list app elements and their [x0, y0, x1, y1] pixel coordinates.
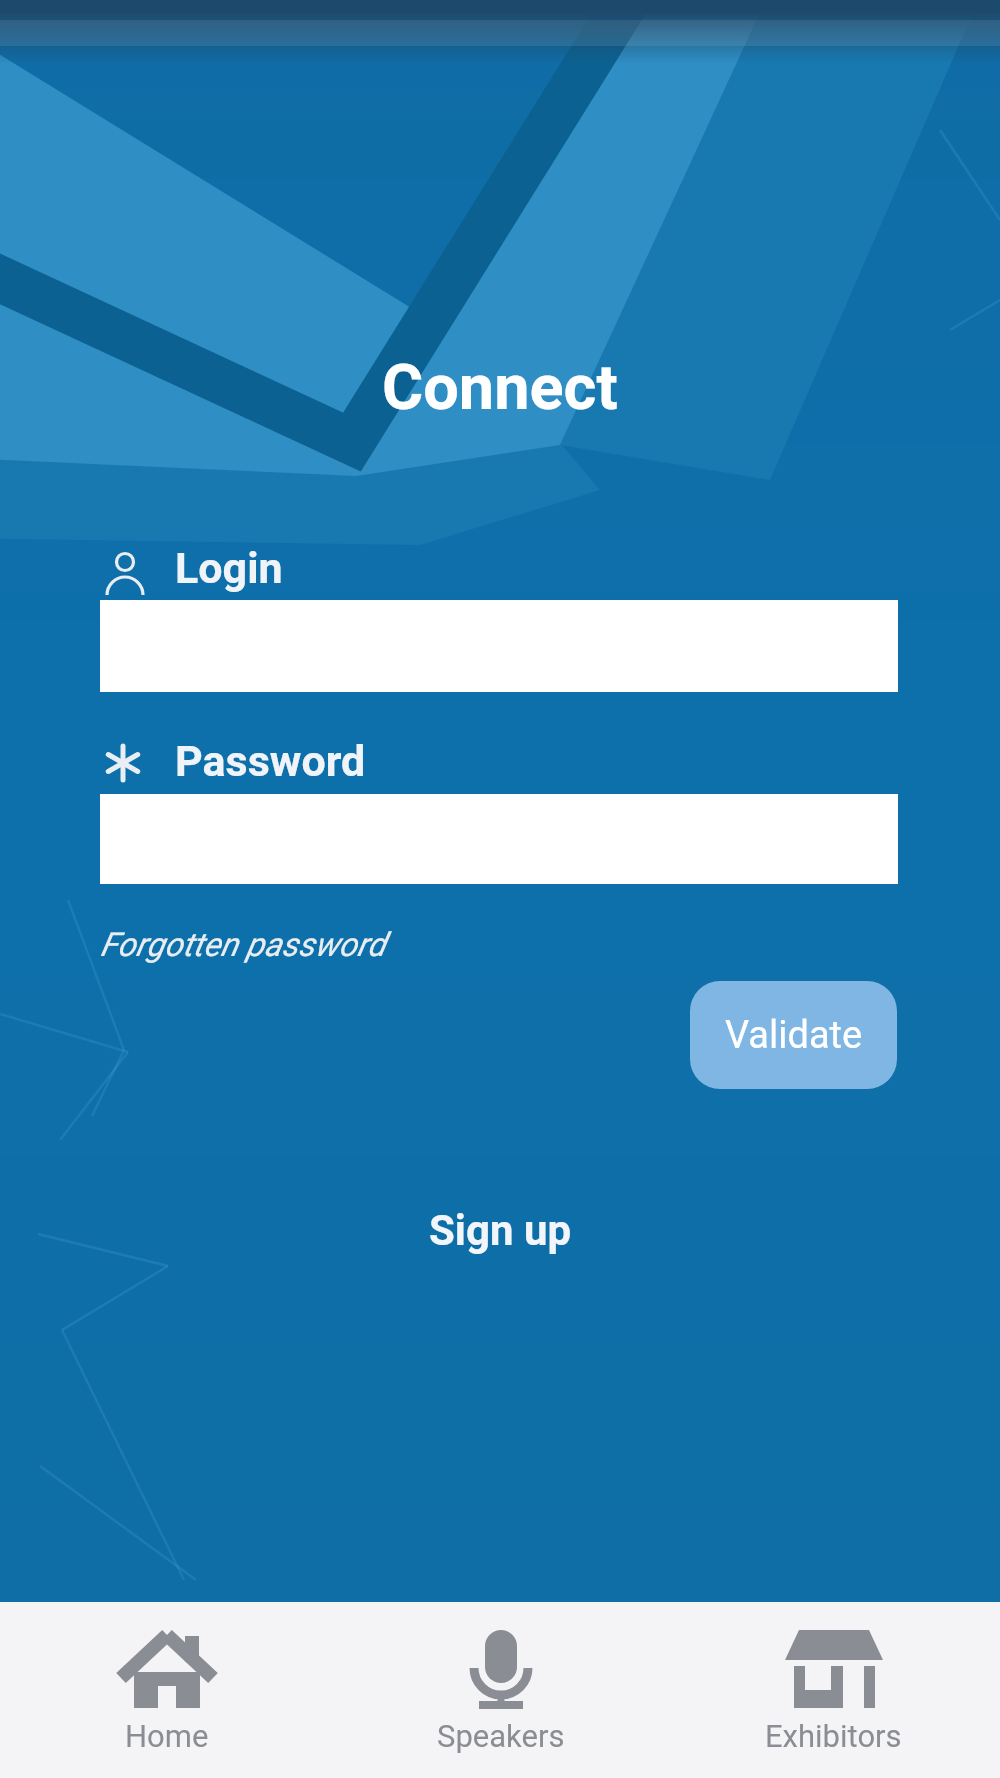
staticText: Sign up: [429, 1206, 572, 1255]
staticText: Login: [175, 543, 283, 593]
staticText: Password: [175, 736, 366, 786]
button[interactable]: Forgotten password: [100, 925, 386, 964]
button[interactable]: Sign up: [429, 1206, 572, 1255]
staticText: Exhibitors: [765, 1718, 902, 1754]
button[interactable]: Validate: [690, 981, 897, 1089]
staticText: Forgotten password: [100, 925, 386, 964]
button[interactable]: Speakers: [334, 1602, 667, 1778]
button[interactable]: Exhibitors: [667, 1602, 1000, 1778]
staticText: Home: [125, 1718, 209, 1754]
button[interactable]: Home: [0, 1602, 334, 1778]
staticText: Speakers: [437, 1718, 565, 1754]
staticText: Validate: [725, 1013, 863, 1058]
staticText: Connect: [382, 351, 618, 425]
